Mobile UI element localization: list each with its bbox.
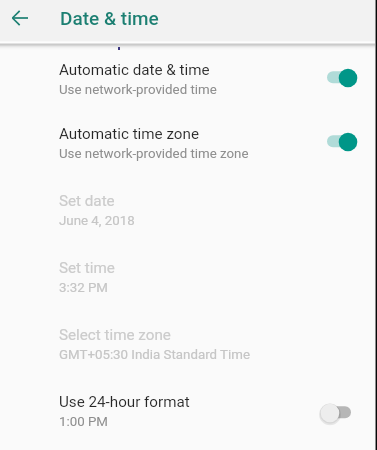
staticText: Date & time <box>60 7 159 29</box>
staticText: Use network-provided time <box>59 82 217 98</box>
staticText: Use 24-hour format <box>59 393 190 411</box>
staticText: June 4, 2018 <box>59 213 135 229</box>
staticText: Select time zone <box>59 326 171 344</box>
button[interactable]: Toggle, on <box>317 65 363 91</box>
button[interactable]: Automatic date & time <box>0 50 377 117</box>
button[interactable]: Toggle, off <box>315 400 361 426</box>
staticText: Use network-provided time zone <box>59 146 249 162</box>
staticText: 3:32 PM <box>59 280 108 296</box>
staticText: Set time <box>59 259 115 277</box>
button[interactable]: Navigate up <box>5 3 35 33</box>
button[interactable]: Select time zone <box>0 315 377 382</box>
staticText: Set date <box>59 192 115 210</box>
button[interactable]: Set time <box>0 248 377 315</box>
staticText: Automatic date & time <box>59 61 210 79</box>
button[interactable]: Toggle, on <box>317 129 363 155</box>
staticText: 1:00 PM <box>59 414 108 430</box>
staticText: Automatic time zone <box>59 125 199 143</box>
button[interactable]: Set date <box>0 181 377 248</box>
staticText: GMT+05:30 India Standard Time <box>59 347 250 363</box>
button[interactable]: Use 24-hour format <box>0 382 377 449</box>
button[interactable]: Automatic time zone <box>0 114 377 181</box>
